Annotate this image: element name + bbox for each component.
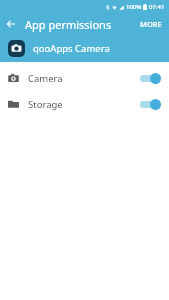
- button[interactable]: qooApps Camera: [0, 35, 169, 62]
- staticText: Storage: [28, 98, 63, 111]
- button[interactable]: Camera: [0, 65, 169, 91]
- staticText: Camera: [28, 72, 63, 85]
- staticText: App permissions: [25, 17, 112, 32]
- button[interactable]: Toggle permission: [139, 71, 161, 85]
- button[interactable]: MORE: [133, 15, 169, 33]
- button[interactable]: Toggle permission: [139, 97, 161, 111]
- staticText: qooApps Camera: [33, 42, 110, 55]
- button[interactable]: Storage: [0, 91, 169, 117]
- staticText: MORE: [140, 19, 162, 29]
- staticText: 100%: [126, 3, 142, 11]
- button[interactable]: Back: [0, 13, 22, 35]
- staticText: 07:41: [149, 3, 165, 11]
